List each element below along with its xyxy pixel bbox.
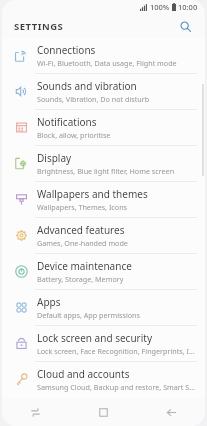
staticText: Notifications — [37, 115, 97, 129]
button[interactable]: Wallpapers and themes — [2, 182, 205, 217]
button[interactable]: Apps — [2, 290, 205, 325]
staticText: 10:00 — [178, 2, 198, 12]
button[interactable]: Advanced features — [2, 218, 205, 253]
staticText: Wallpapers, Themes, Icons — [37, 202, 128, 212]
button[interactable]: Lock screen and security — [2, 326, 205, 361]
staticText: Apps — [37, 295, 61, 309]
staticText: Battery, Storage, Memory — [37, 274, 124, 284]
staticText: Cloud and accounts — [37, 367, 130, 381]
staticText: Display — [37, 151, 72, 165]
staticText: Advanced features — [37, 223, 125, 237]
button[interactable]: Display — [2, 146, 205, 181]
button[interactable]: Device maintenance — [2, 254, 205, 289]
staticText: Connections — [37, 43, 96, 57]
button[interactable]: Sounds and vibration — [2, 74, 205, 109]
staticText: Wi-Fi, Bluetooth, Data usage, Flight mod… — [37, 58, 177, 68]
staticText: Default apps, App permissions — [37, 310, 140, 320]
button[interactable]: Search — [176, 17, 194, 35]
button[interactable]: Back — [137, 398, 205, 426]
button[interactable]: Notifications — [2, 110, 205, 145]
staticText: Block, allow, prioritise — [37, 130, 111, 140]
staticText: Games, One-handed mode — [37, 238, 128, 248]
button[interactable]: Recents — [2, 398, 69, 426]
button[interactable]: Cloud and accounts — [2, 362, 205, 397]
staticText: Sounds, Vibration, Do not disturb — [37, 94, 150, 104]
staticText: Device maintenance — [37, 259, 132, 273]
staticText: Wallpapers and themes — [37, 187, 148, 201]
staticText: 100% — [150, 2, 170, 12]
staticText: Samsung Cloud, Backup and restore, Smart… — [37, 382, 197, 392]
staticText: SETTINGS — [14, 20, 64, 33]
staticText: Lock screen and security — [37, 331, 152, 345]
button[interactable]: Home — [69, 398, 137, 426]
button[interactable]: Connections — [2, 38, 205, 73]
staticText: Sounds and vibration — [37, 79, 137, 93]
staticText: Lock screen, Face Recognition, Fingerpri… — [37, 346, 197, 356]
staticText: Brightness, Blue light filter, Home scre… — [37, 166, 175, 176]
